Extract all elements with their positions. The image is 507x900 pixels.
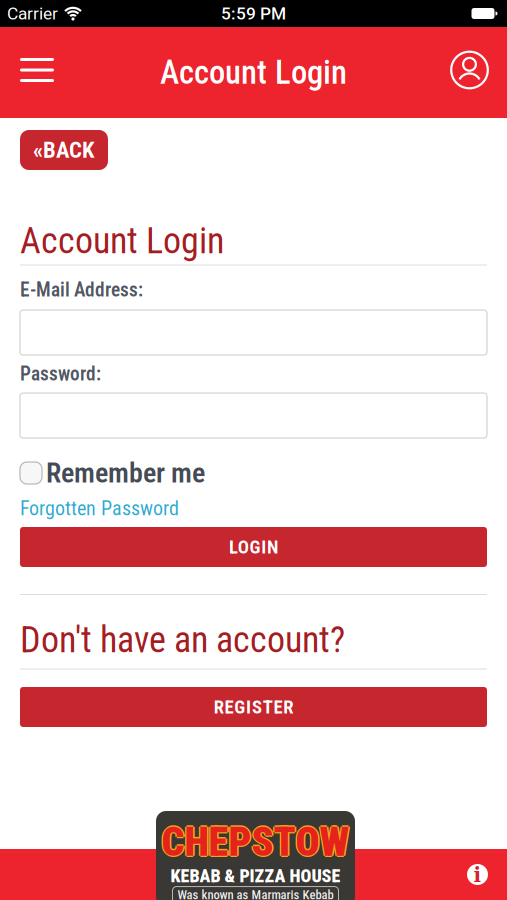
staticText: Don't have an account?: [20, 619, 345, 661]
staticText: Account Login: [20, 220, 224, 262]
staticText: CHEPSTOW: [161, 819, 349, 865]
staticText: 5:59 PM: [221, 3, 286, 24]
button[interactable]: Info: [467, 863, 488, 886]
button[interactable]: REGISTER: [20, 687, 487, 727]
staticText: Carrier: [7, 3, 58, 24]
button[interactable]: Account: [448, 48, 491, 91]
staticText: Account Login: [160, 53, 347, 92]
button[interactable]: Remember me: [20, 457, 487, 489]
staticText: i: [473, 863, 481, 887]
staticText: CHEPSTOW: [161, 820, 349, 867]
button[interactable]: «BACK: [20, 130, 108, 170]
staticText: Was known as Marmaris Kebab: [177, 888, 333, 900]
button[interactable]: LOGIN: [20, 527, 487, 567]
staticText: CHEPSTOW: [161, 817, 349, 864]
staticText: Forgotten Password: [20, 497, 179, 520]
button[interactable]: Forgotten Password: [20, 497, 487, 520]
staticText: CHEPSTOW: [163, 819, 351, 865]
staticText: CHEPSTOW: [160, 819, 348, 865]
staticText: REGISTER: [214, 696, 293, 718]
staticText: KEBAB & PIZZA HOUSE: [170, 865, 340, 887]
staticText: LOGIN: [229, 536, 278, 558]
staticText: Password:: [20, 363, 101, 385]
button[interactable]: Menu: [12, 50, 62, 90]
staticText: Remember me: [46, 457, 205, 489]
staticText: «BACK: [33, 137, 95, 163]
staticText: E-Mail Address:: [20, 279, 143, 301]
